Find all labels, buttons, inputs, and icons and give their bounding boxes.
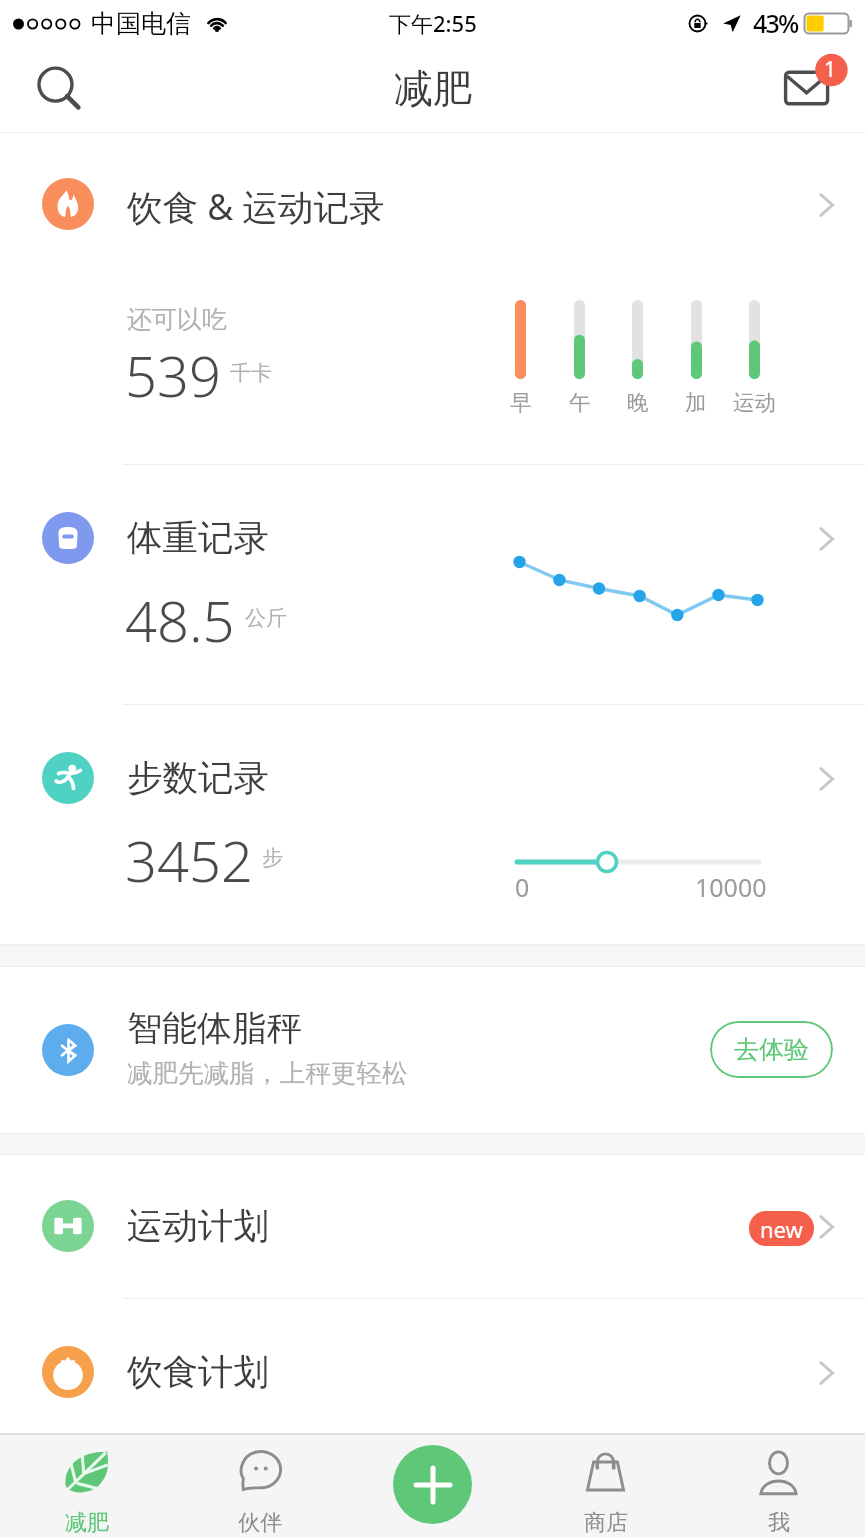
staticText: 3452 — [125, 822, 253, 898]
staticText: 伙伴 — [238, 1509, 282, 1537]
staticText: 加 — [685, 389, 707, 416]
button[interactable]: 商店 — [519, 1433, 692, 1537]
staticText: 步 — [262, 845, 283, 871]
button[interactable]: 步数记录 — [0, 722, 865, 834]
staticText: 减肥 — [394, 64, 472, 113]
staticText: 去体验 — [734, 1034, 809, 1065]
button[interactable]: 我 — [692, 1433, 865, 1537]
staticText: 千卡 — [230, 360, 272, 386]
button[interactable]: 饮食计划 — [0, 1316, 865, 1428]
button[interactable]: 伙伴 — [173, 1433, 346, 1537]
button[interactable]: 去体验 — [710, 1021, 833, 1078]
staticText: 下午2:55 — [389, 8, 477, 38]
button[interactable]: 饮食 & 运动记录 — [0, 148, 865, 260]
staticText: 体重记录 — [127, 516, 269, 561]
staticText: 饮食 & 运动记录 — [127, 182, 385, 230]
button[interactable]: 减肥 — [0, 1433, 173, 1537]
staticText: 智能体脂秤 — [127, 1006, 302, 1050]
staticText: 还可以吃 — [127, 304, 227, 335]
staticText: 商店 — [584, 1509, 628, 1537]
staticText: 中国电信 — [91, 8, 191, 39]
staticText: 我 — [768, 1509, 790, 1537]
button[interactable]: 运动计划 — [0, 1170, 865, 1282]
button[interactable]: 智能体脂秤 — [0, 967, 865, 1133]
staticText: 0 — [515, 870, 530, 904]
staticText: 午 — [569, 389, 591, 416]
button[interactable]: Messages — [780, 54, 850, 124]
button[interactable]: Add record — [393, 1445, 472, 1524]
staticText: 43% — [753, 6, 798, 40]
staticText: 48.5 — [125, 582, 235, 658]
staticText: 晚 — [627, 389, 649, 416]
staticText: 10000 — [695, 870, 767, 904]
staticText: 步数记录 — [127, 756, 269, 801]
staticText: 减肥先减脂，上秤更轻松 — [127, 1057, 408, 1089]
button[interactable]: Search — [22, 52, 96, 126]
staticText: 539 — [125, 337, 221, 413]
staticText: new — [760, 1214, 803, 1244]
staticText: 减肥 — [65, 1509, 109, 1537]
staticText: 公斤 — [245, 605, 287, 631]
staticText: 早 — [510, 389, 532, 416]
staticText: 运动计划 — [127, 1204, 269, 1249]
staticText: 1 — [824, 55, 837, 84]
staticText: 运动 — [733, 389, 776, 416]
staticText: 饮食计划 — [127, 1350, 269, 1395]
button[interactable]: 体重记录 — [0, 482, 865, 594]
